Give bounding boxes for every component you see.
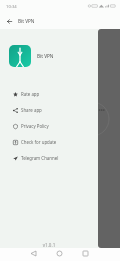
staticText: Check for update [21,139,57,145]
staticText: Bit VPN [37,53,54,59]
button[interactable]: Check for update [0,134,98,150]
button[interactable]: Rate app [0,86,98,102]
button[interactable]: Back [28,248,39,259]
staticText: Share app [21,107,42,113]
staticText: Bit VPN [18,18,35,24]
button[interactable]: Share app [0,102,98,118]
staticText: v1.0.1 [0,242,98,248]
button[interactable]: Telegram Channel [0,150,98,166]
staticText: 10:34 [6,4,17,10]
button[interactable]: Recents [80,248,91,259]
staticText: Privacy Policy [21,123,49,129]
staticText: Rate app [21,91,40,97]
staticText: Telegram Channel [21,155,59,161]
button[interactable]: Home [54,248,65,259]
button[interactable]: Privacy Policy [0,118,98,134]
button[interactable]: Back [4,16,14,26]
